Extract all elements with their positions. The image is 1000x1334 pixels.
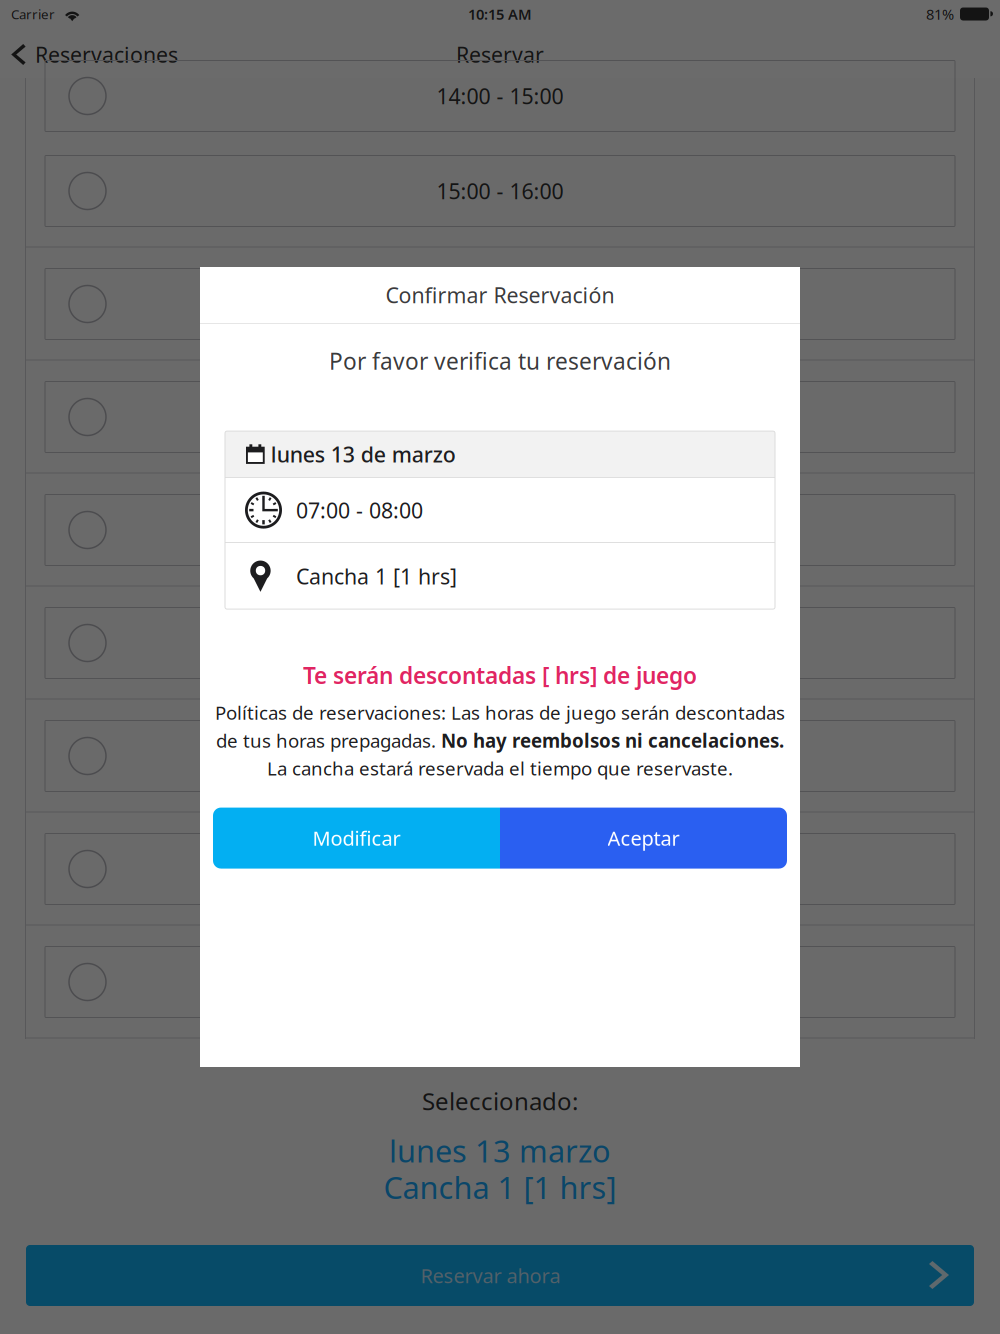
staticText: 07:00 - 08:00 [296, 496, 423, 524]
staticText: Reservaciones [35, 40, 178, 69]
button[interactable]: Reservar ahora [0, 1245, 1000, 1306]
staticText: Reservar ahora [420, 1262, 560, 1289]
button[interactable]: Aceptar [500, 808, 787, 869]
staticText: Por favor verifica tu reservación [329, 346, 671, 376]
staticText: 10:15 AM [468, 4, 532, 24]
button[interactable]: 19:00 - 20:00 [0, 587, 1000, 700]
staticText: de tus horas prepagadas. [216, 728, 441, 753]
staticText: 15:00 - 16:00 [436, 177, 563, 205]
staticText: Cancha 1 [1 hrs] [296, 562, 457, 590]
button[interactable]: 18:00 - 19:00 [0, 474, 1000, 587]
staticText: 16:00 - 17:00 [436, 290, 563, 318]
staticText: Cancha 1 [1 hrs] [383, 1167, 616, 1207]
staticText: Aceptar [607, 825, 679, 851]
staticText: Reservar [456, 40, 544, 69]
button[interactable]: 17:00 - 18:00 [0, 361, 1000, 474]
staticText: 81% [926, 4, 954, 24]
button[interactable]: Modificar [213, 808, 500, 869]
button[interactable]: Reservaciones [0, 29, 190, 79]
staticText: lunes 13 de marzo [271, 440, 456, 468]
staticText: Modificar [312, 825, 400, 851]
staticText: 20:00 - 21:00 [436, 742, 563, 770]
staticText: Confirmar Reservación [385, 281, 614, 309]
staticText: No hay reembolsos ni cancelaciones. [441, 728, 784, 753]
staticText: Te serán descontadas [ hrs] de juego [303, 660, 697, 690]
button[interactable]: 16:00 - 17:00 [0, 248, 1000, 361]
staticText: 18:00 - 19:00 [436, 516, 563, 544]
staticText: Políticas de reservaciones: Las horas de… [215, 700, 785, 725]
button[interactable]: 21:00 - 22:00 [0, 813, 1000, 926]
staticText: 14:00 - 15:00 [436, 82, 563, 110]
staticText: Seleccionado: [422, 1085, 578, 1117]
staticText: La cancha estará reservada el tiempo que… [267, 756, 733, 781]
button[interactable]: 15:00 - 16:00 [0, 135, 1000, 248]
staticText: lunes 13 marzo [389, 1130, 611, 1171]
button[interactable]: 20:00 - 21:00 [0, 700, 1000, 813]
staticText: Carrier [11, 5, 55, 23]
staticText: 21:00 - 22:00 [436, 855, 563, 883]
button[interactable]: 22:00 - 23:00 [0, 926, 1000, 1039]
